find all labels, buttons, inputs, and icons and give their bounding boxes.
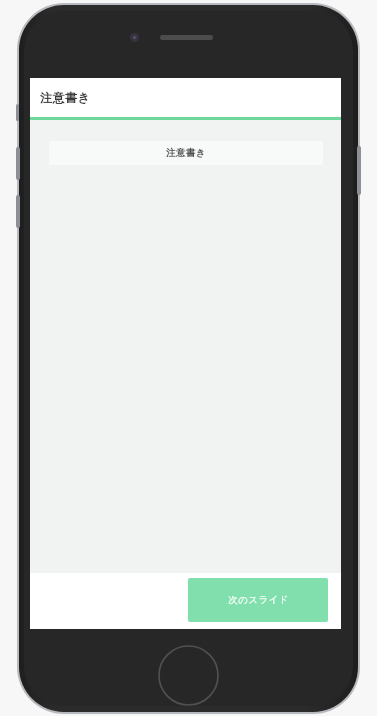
button[interactable]: 次のスライド [188, 578, 328, 622]
staticText: 次のスライド [228, 594, 289, 606]
button[interactable]: 注意書き [49, 141, 323, 165]
staticText: 注意書き [166, 147, 206, 159]
staticText: 注意書き [40, 90, 91, 105]
